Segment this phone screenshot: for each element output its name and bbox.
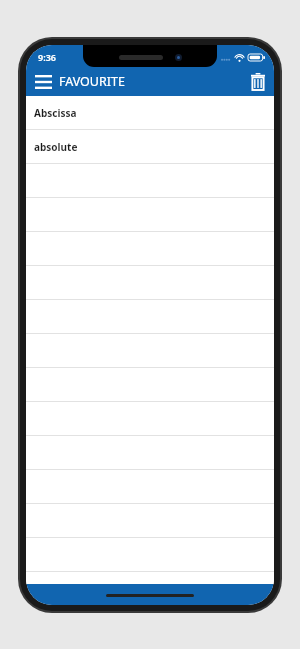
other: Open navigation menu — [35, 75, 52, 89]
button[interactable]: Open navigation menu — [26, 67, 127, 96]
button[interactable]: Delete all favourites — [242, 67, 274, 96]
staticText: Abscissa — [34, 106, 77, 120]
staticText: FAVOURITE — [59, 73, 125, 90]
staticText: absolute — [34, 140, 78, 154]
button[interactable]: absolute — [26, 130, 274, 164]
button[interactable]: Abscissa — [26, 96, 274, 130]
staticText: 9:36 — [38, 51, 56, 63]
